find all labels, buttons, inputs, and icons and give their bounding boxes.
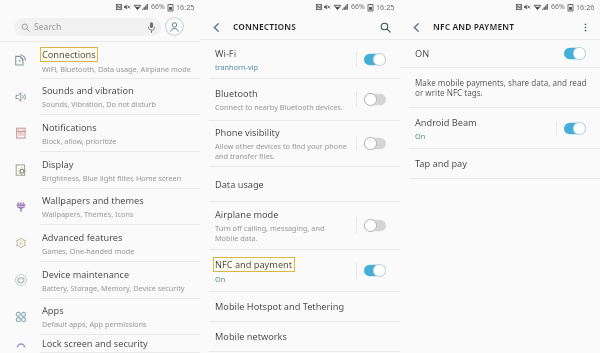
staticText: Wallpapers, Themes, Icons	[42, 209, 134, 219]
staticText: Make mobile payments, share data, and re…	[415, 77, 587, 99]
staticText: Mobile networks	[215, 330, 287, 343]
staticText: Turn off calling, messaging, and Mobile …	[215, 223, 325, 243]
button[interactable]: ON	[400, 40, 600, 68]
button[interactable]: Phone visibility	[200, 121, 400, 167]
staticText: Notifications	[42, 121, 97, 134]
staticText: Data usage	[215, 178, 264, 191]
staticText: 16:25	[176, 2, 195, 12]
button[interactable]: Search	[378, 20, 392, 34]
staticText: Advanced features	[42, 231, 123, 244]
staticText: Device maintenance	[42, 268, 130, 281]
staticText: Bluetooth	[215, 87, 258, 100]
button[interactable]: On	[564, 122, 586, 135]
staticText: Wallpapers and themes	[42, 194, 144, 207]
staticText: 66%	[351, 2, 365, 12]
staticText: Lock screen and security	[42, 337, 148, 350]
staticText: Search	[34, 21, 62, 33]
button[interactable]: On	[364, 53, 386, 66]
staticText: Tap and pay	[415, 157, 467, 170]
staticText: NFC and payment	[215, 258, 293, 271]
staticText: tranhorn-vip	[215, 62, 258, 72]
staticText: Display	[42, 158, 74, 171]
button[interactable]: Off	[364, 219, 386, 232]
staticText: NFC AND PAYMENT	[433, 21, 515, 32]
button[interactable]: Connections	[0, 42, 200, 79]
button[interactable]: Lock screen and security	[0, 335, 200, 353]
staticText: Allow other devices to find your phone a…	[215, 141, 347, 161]
staticText: Phone visibility	[215, 126, 280, 139]
button[interactable]: Sounds and vibration	[0, 79, 200, 115]
button[interactable]: Display	[0, 152, 200, 189]
staticText: Sounds and vibration	[42, 84, 134, 97]
other: Voice search	[148, 22, 155, 33]
button[interactable]: Android Beam	[400, 108, 600, 149]
button[interactable]: On	[364, 264, 386, 277]
staticText: Wi-Fi	[215, 47, 237, 60]
button[interactable]: Bluetooth	[200, 79, 400, 121]
button[interactable]: Tap and pay	[400, 149, 600, 179]
staticText: On	[215, 274, 226, 284]
button[interactable]: Apps	[0, 299, 200, 335]
staticText: Battery, Storage, Memory, Device securit…	[42, 283, 185, 293]
staticText: Games, One-handed mode	[42, 246, 135, 256]
staticText: WiFi, Bluetooth, Data usage, Airplane mo…	[42, 64, 191, 74]
staticText: CONNECTIONS	[233, 21, 296, 32]
button[interactable]: NFC and payment	[200, 250, 400, 292]
staticText: 66%	[551, 2, 565, 12]
button[interactable]: Mobile Hotspot and Tethering	[200, 292, 400, 322]
button[interactable]: Wallpapers and themes	[0, 189, 200, 225]
staticText: Connections	[42, 48, 96, 61]
staticText: Mobile Hotspot and Tethering	[215, 300, 345, 313]
staticText: ON	[415, 47, 430, 60]
staticText: Airplane mode	[215, 208, 279, 221]
button[interactable]: Account	[165, 17, 184, 36]
staticText: On	[415, 131, 426, 141]
button[interactable]: Off	[364, 137, 386, 150]
button[interactable]: Data usage	[200, 167, 400, 202]
button[interactable]: Off	[364, 93, 386, 106]
button[interactable]: Back	[409, 20, 423, 34]
button[interactable]: Back	[209, 20, 223, 34]
staticText: 16:25	[376, 2, 395, 12]
button[interactable]: Notifications	[0, 115, 200, 152]
staticText: Block, allow, prioritize	[42, 136, 117, 146]
button[interactable]: More options	[578, 20, 592, 34]
button[interactable]: Airplane mode	[200, 202, 400, 250]
staticText: 16:26	[576, 2, 595, 12]
button[interactable]: Device maintenance	[0, 262, 200, 299]
staticText: Apps	[42, 304, 64, 317]
staticText: Default apps, App permissions	[42, 319, 147, 329]
button[interactable]: Wi-Fi	[200, 40, 400, 79]
button[interactable]: Search	[14, 18, 161, 36]
button[interactable]: Advanced features	[0, 225, 200, 262]
staticText: Sounds, Vibration, Do not disturb	[42, 99, 156, 109]
button[interactable]: On	[564, 47, 586, 60]
button[interactable]: Mobile networks	[200, 322, 400, 352]
staticText: Brightness, Blue light filter, Home scre…	[42, 173, 182, 183]
staticText: 66%	[151, 2, 165, 12]
staticText: Connect to nearby Bluetooth devices.	[215, 102, 343, 112]
staticText: Android Beam	[415, 116, 477, 129]
